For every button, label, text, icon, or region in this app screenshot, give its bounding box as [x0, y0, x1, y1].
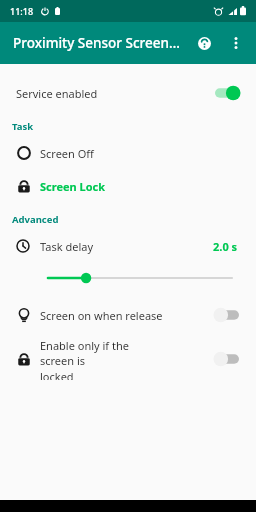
staticText: Service enabled [16, 86, 98, 101]
staticText: Screen on when release [40, 308, 163, 323]
staticText: Task delay [40, 239, 93, 254]
button[interactable]: Screen on when release [0, 300, 256, 330]
button[interactable]: Task delay [0, 233, 256, 259]
staticText: Enable only if the screen is [40, 338, 165, 368]
button[interactable]: Enable only if the screen is [0, 338, 256, 380]
staticText: Screen Lock [40, 179, 106, 194]
button[interactable]: On [210, 83, 244, 103]
button[interactable]: Help [189, 28, 219, 58]
staticText: 11:18 [10, 5, 34, 17]
staticText: Advanced [12, 213, 59, 226]
staticText: Screen Off [40, 146, 94, 161]
staticText: 2.0 s [213, 239, 238, 254]
staticText: Proximity Sensor Screen… [13, 34, 180, 52]
button[interactable]: Screen Lock [0, 172, 256, 200]
button[interactable]: Off [210, 349, 244, 369]
button[interactable]: Task delay slider [0, 268, 256, 288]
staticText: Task [12, 120, 34, 133]
button[interactable]: Service enabled [0, 78, 256, 108]
button[interactable]: Off [210, 305, 244, 325]
button[interactable]: Screen Off [0, 139, 256, 167]
staticText: locked [40, 369, 74, 380]
button[interactable]: More options [221, 28, 251, 58]
